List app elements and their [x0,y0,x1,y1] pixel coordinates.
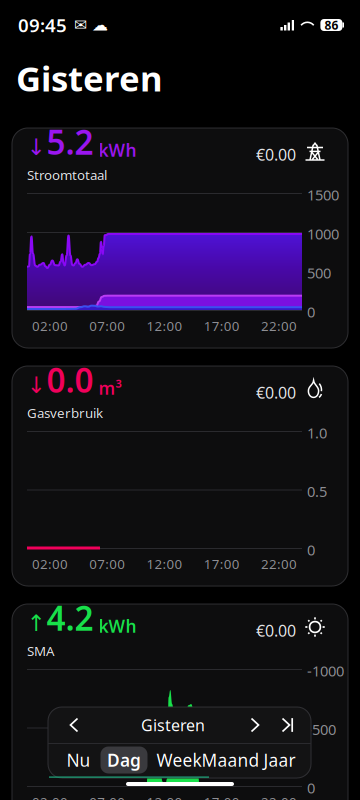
staticText: 17:00 [204,555,240,573]
staticText: 07:00 [89,793,125,800]
staticText: ↓ [26,134,45,160]
staticText: 1000 [307,224,339,243]
staticText: Gisteren [16,55,163,101]
staticText: kWh [98,138,136,161]
staticText: 07:00 [89,555,125,573]
button[interactable]: Dag [100,746,147,773]
staticText: Maand [201,748,259,771]
staticText: 86 [324,17,338,33]
staticText: 0 [307,302,315,321]
staticText: Dag [107,748,141,771]
button[interactable]: Jaar [258,746,300,773]
staticText: 1.0 [307,423,327,442]
staticText: 12:00 [146,555,182,573]
staticText: -1000 [307,661,344,680]
staticText: Jaar [263,748,295,771]
staticText: Stroomtotaal [27,166,107,184]
staticText: ↑ [26,610,45,636]
staticText: 0 [307,778,315,797]
staticText: 0.5 [307,481,327,501]
staticText: 1500 [307,185,339,204]
staticText: SMA [27,642,55,660]
button[interactable]: Week [155,746,203,773]
staticText: ✉ [74,16,87,34]
staticText: 0 [307,540,315,559]
staticText: 12:00 [146,793,182,800]
button[interactable]: Nu [59,746,97,773]
staticText: 09:45 [18,13,67,37]
staticText: -500 [307,719,336,739]
staticText: 02:00 [32,555,68,573]
staticText: kWh [98,614,136,637]
staticText: €0.00 [256,144,296,165]
staticText: 02:00 [32,317,68,335]
staticText: 07:00 [89,317,125,335]
staticText: 0.0 [46,358,93,402]
staticText: m³ [98,376,121,399]
staticText: Gisteren [141,714,205,736]
staticText: 22:00 [261,793,297,800]
staticText: 02:00 [32,793,68,800]
staticText: 5.2 [46,120,93,164]
button[interactable]: Volgende [240,708,270,742]
staticText: 12:00 [146,317,182,335]
staticText: ☁ [92,16,108,34]
staticText: 22:00 [261,555,297,573]
button[interactable]: Laatste [273,708,303,742]
button[interactable]: Maand [202,746,258,773]
staticText: Week [156,748,201,771]
staticText: 17:00 [204,317,240,335]
staticText: €0.00 [256,620,296,641]
button[interactable]: Vorige [57,708,91,742]
staticText: Nu [66,748,90,771]
staticText: 17:00 [204,793,240,800]
staticText: €0.00 [256,382,296,403]
staticText: 22:00 [261,317,297,335]
staticText: ↓ [26,372,45,398]
staticText: 500 [307,263,331,282]
staticText: Gasverbruik [27,404,103,422]
staticText: 4.2 [46,596,93,640]
